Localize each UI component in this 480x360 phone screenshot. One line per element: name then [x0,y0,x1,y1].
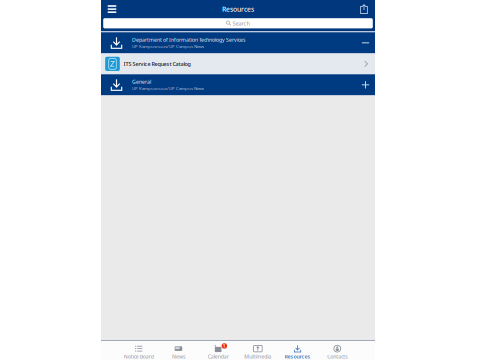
button[interactable]: General [101,74,375,95]
button[interactable]: Multimedia [238,341,278,360]
button[interactable]: Department of Information Technology Ser… [101,32,375,53]
staticText: News [172,353,185,360]
staticText: Search [233,20,250,27]
staticText: General [132,78,151,85]
staticText: Contacts [327,353,347,360]
button[interactable]: ITS Service Request Catalog [101,53,375,74]
button[interactable]: Resources [278,341,317,360]
button[interactable]: Menu [101,1,123,18]
staticText: Resources [222,5,254,14]
button[interactable]: Share [353,1,375,18]
staticText: Notice Board [124,353,154,360]
staticText: 1 [223,343,226,349]
staticText: ITS Service Request Catalog [123,60,190,67]
staticText: Department of Information Technology Ser… [132,36,245,43]
staticText: Multimedia [244,353,271,360]
button[interactable]: News [159,341,198,360]
button[interactable]: Notice Board [119,341,159,360]
button[interactable]: Contacts [317,341,357,360]
staticText: Calendar [208,353,229,360]
staticText: UP Kampusnuus/UP Campus News [132,43,204,49]
staticText: UP Kampusnuus/UP Campus News [132,85,204,91]
button[interactable]: Search [103,18,373,28]
button[interactable]: 1 [198,341,238,360]
staticText: Resources [285,353,311,360]
